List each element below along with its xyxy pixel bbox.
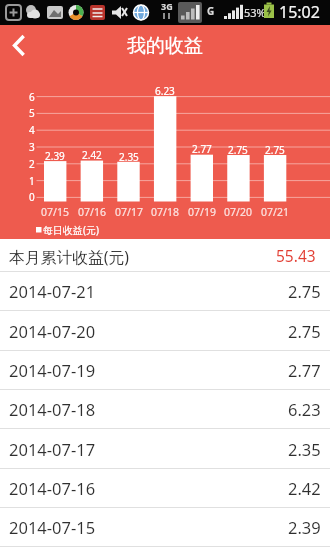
staticText: 本月累计收益(元)	[9, 246, 130, 268]
staticText: 07/15	[41, 205, 69, 219]
staticText: 2.39	[288, 516, 321, 538]
staticText: 2014-07-21	[9, 280, 96, 302]
staticText: G	[207, 4, 215, 18]
staticText: 2.77	[288, 359, 321, 381]
staticText: 2.35	[288, 438, 321, 460]
staticText: 2.75	[265, 143, 285, 157]
staticText: 2.42	[82, 148, 102, 162]
staticText: 53%	[244, 5, 266, 20]
staticText: 3	[29, 140, 35, 154]
staticText: 2.35	[119, 150, 139, 164]
staticText: 2.75	[228, 143, 248, 157]
staticText: 55.43	[276, 245, 316, 266]
staticText: 2	[29, 157, 35, 171]
staticText: 07/21	[261, 205, 289, 219]
button[interactable]: 2014-07-16	[0, 469, 330, 508]
staticText: 6	[29, 90, 35, 104]
button[interactable]: 2014-07-15	[0, 508, 330, 547]
button[interactable]: 2014-07-21	[0, 272, 330, 311]
staticText: 07/18	[151, 205, 179, 219]
staticText: 0	[29, 190, 35, 204]
button[interactable]	[0, 25, 38, 65]
staticText: 每日收益(元)	[43, 223, 99, 237]
staticText: 6.23	[155, 84, 175, 98]
staticText: 07/16	[78, 205, 106, 219]
staticText: 2014-07-16	[9, 477, 96, 499]
staticText: 15:02	[279, 1, 320, 23]
staticText: 6.23	[288, 398, 321, 420]
button[interactable]: 本月累计收益(元)	[0, 239, 330, 272]
staticText: 2014-07-20	[9, 320, 96, 342]
staticText: 07/19	[188, 205, 216, 219]
staticText: 2.39	[45, 149, 65, 163]
staticText: 5	[29, 106, 35, 120]
staticText: 07/17	[115, 205, 143, 219]
button[interactable]: 2014-07-20	[0, 311, 330, 351]
button[interactable]: 2014-07-17	[0, 429, 330, 469]
staticText: 2.75	[288, 280, 321, 302]
staticText: 2.42	[288, 477, 321, 499]
staticText: 2014-07-17	[9, 438, 96, 460]
staticText: 4	[29, 123, 35, 137]
staticText: 我的收益	[127, 34, 203, 58]
staticText: 2.75	[288, 320, 321, 342]
button[interactable]: 2014-07-19	[0, 351, 330, 390]
staticText: 2014-07-18	[9, 398, 96, 420]
staticText: 2014-07-15	[9, 516, 96, 538]
staticText: 1	[29, 174, 35, 188]
button[interactable]: 2014-07-18	[0, 390, 330, 429]
staticText: 2.77	[192, 142, 212, 156]
staticText: 3G	[161, 0, 173, 12]
staticText: 07/20	[224, 205, 252, 219]
staticText: 2014-07-19	[9, 359, 96, 381]
